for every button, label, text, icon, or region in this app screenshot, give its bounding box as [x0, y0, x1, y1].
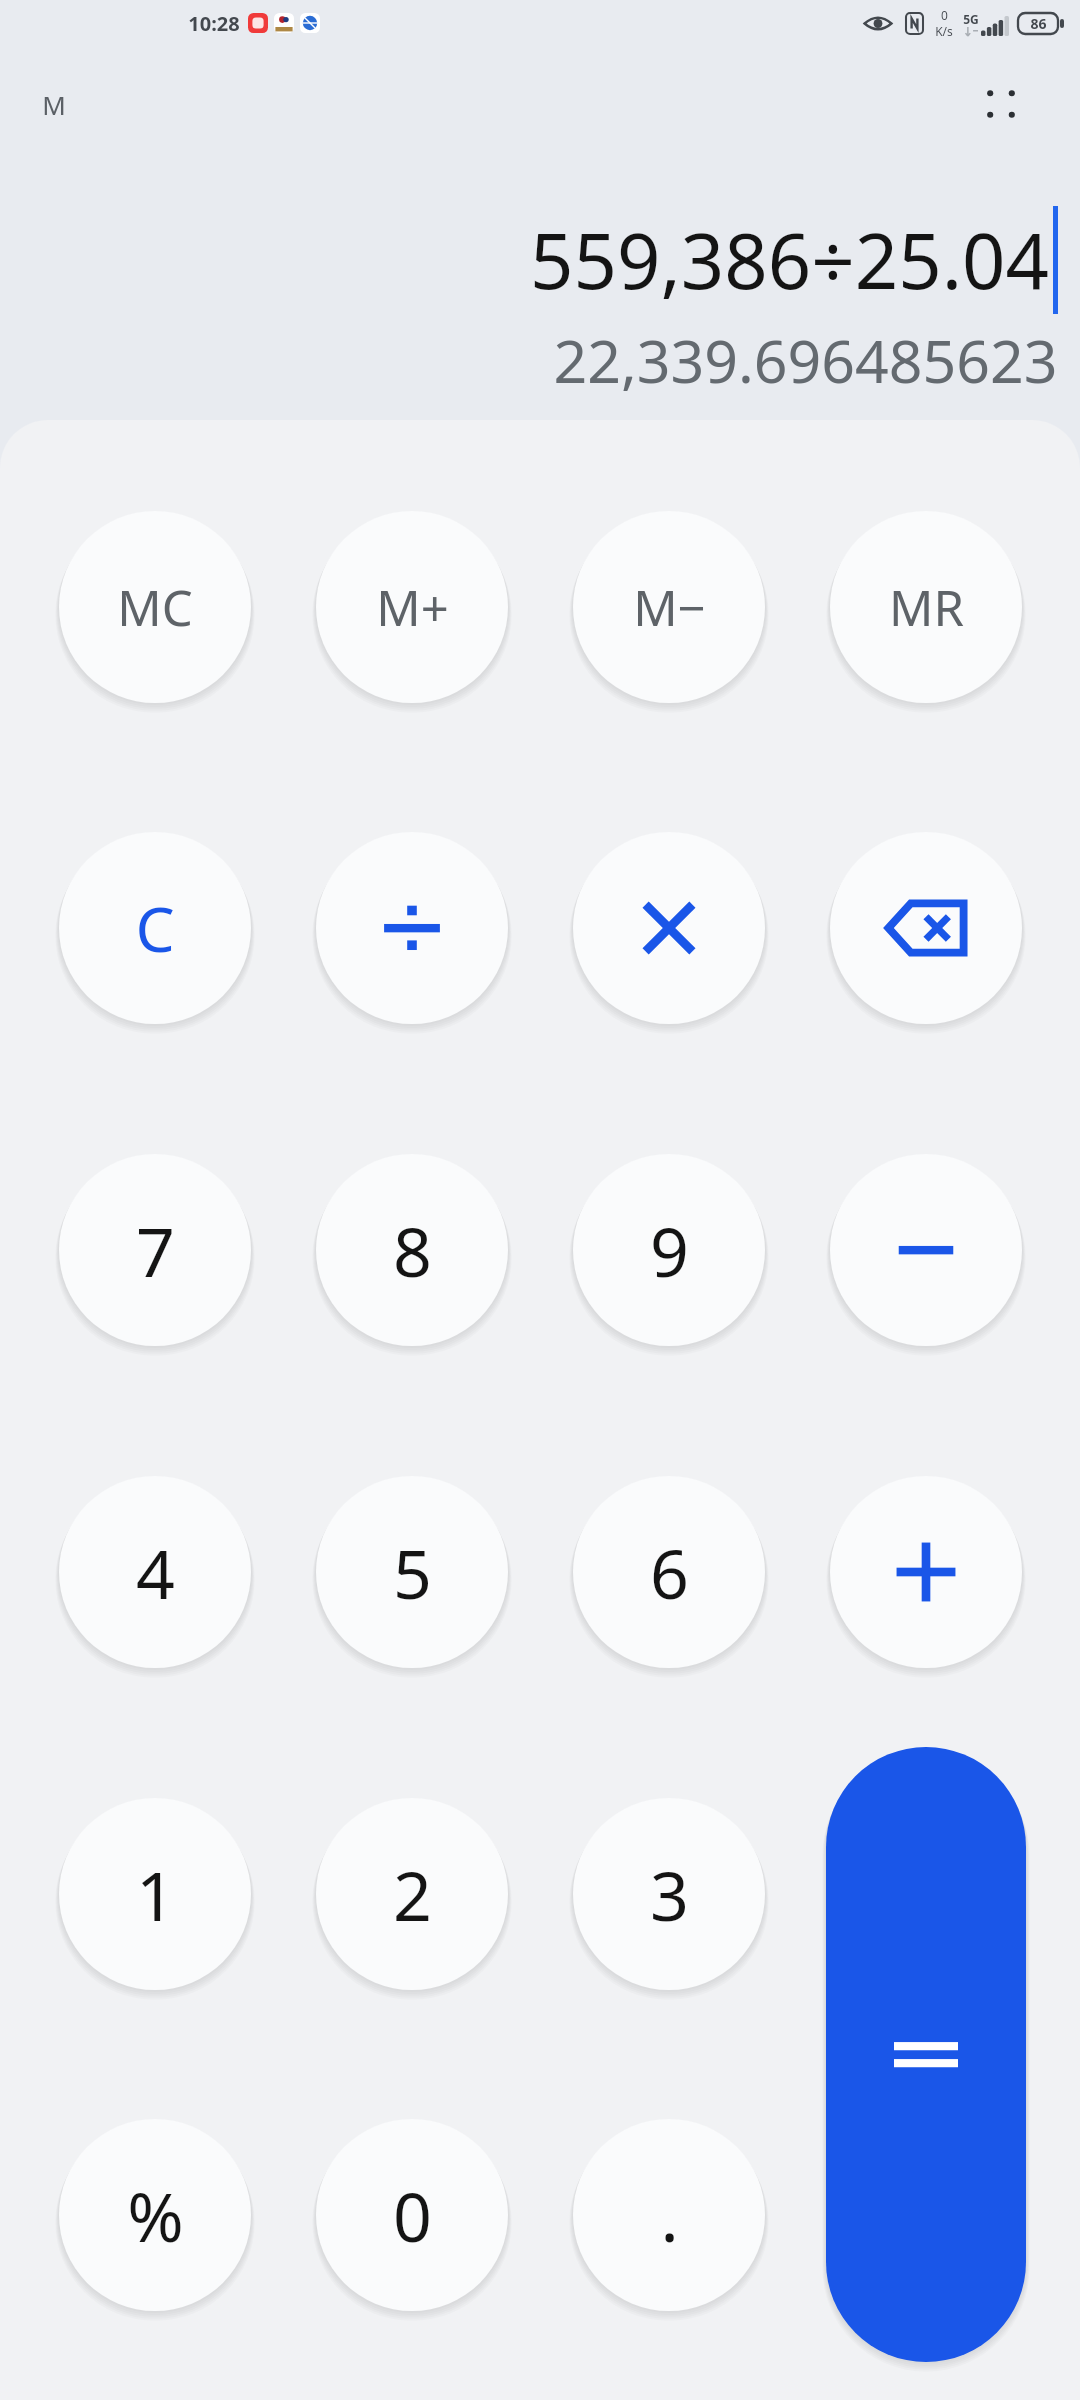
staticText: C	[135, 886, 175, 970]
staticText: 0	[393, 2169, 432, 2262]
button[interactable]: C	[59, 832, 251, 1024]
staticText: 5	[393, 1526, 432, 1619]
staticText: 10:28	[188, 10, 240, 37]
button[interactable]: Equals	[826, 1747, 1026, 2362]
button[interactable]: 7	[59, 1154, 251, 1346]
button[interactable]: M+	[316, 511, 508, 703]
staticText: K/s	[935, 23, 953, 39]
staticText: 1	[136, 1848, 175, 1941]
staticText: 5G	[963, 11, 979, 27]
staticText: M	[42, 87, 66, 122]
button[interactable]: Minus	[830, 1154, 1022, 1346]
button[interactable]: Multiply	[573, 832, 765, 1024]
button[interactable]: Divide	[316, 832, 508, 1024]
button[interactable]: MR	[830, 511, 1022, 703]
button[interactable]: 8	[316, 1154, 508, 1346]
staticText: 22,339.696485623	[553, 320, 1058, 400]
staticText: MR	[889, 574, 964, 641]
button[interactable]: MC	[59, 511, 251, 703]
staticText: M−	[633, 574, 706, 641]
staticText: 7	[136, 1204, 175, 1297]
staticText: 3	[650, 1848, 689, 1941]
staticText: MC	[117, 574, 193, 641]
button[interactable]: 3	[573, 1798, 765, 1990]
staticText: 0	[941, 7, 948, 23]
staticText: 559,386÷25.04	[530, 208, 1049, 312]
button[interactable]: Percent	[59, 2119, 251, 2311]
button[interactable]: Decimal point	[573, 2119, 765, 2311]
button[interactable]: M	[34, 81, 74, 128]
staticText: %	[127, 2169, 184, 2262]
button[interactable]: 0	[316, 2119, 508, 2311]
staticText: 2	[393, 1848, 432, 1941]
staticText: 6	[650, 1526, 689, 1619]
staticText: M+	[376, 574, 449, 641]
staticText: 8	[393, 1204, 432, 1297]
staticText: 4	[136, 1526, 175, 1619]
button[interactable]: 2	[316, 1798, 508, 1990]
button[interactable]: More options	[966, 69, 1036, 139]
staticText: .	[660, 2169, 679, 2262]
button[interactable]: Plus	[830, 1476, 1022, 1668]
button[interactable]: 5	[316, 1476, 508, 1668]
button[interactable]: 6	[573, 1476, 765, 1668]
button[interactable]: 4	[59, 1476, 251, 1668]
button[interactable]: 9	[573, 1154, 765, 1346]
staticText: 9	[650, 1204, 689, 1297]
staticText: 86	[1030, 14, 1047, 33]
button[interactable]: 1	[59, 1798, 251, 1990]
button[interactable]: Backspace	[830, 832, 1022, 1024]
button[interactable]: M−	[573, 511, 765, 703]
